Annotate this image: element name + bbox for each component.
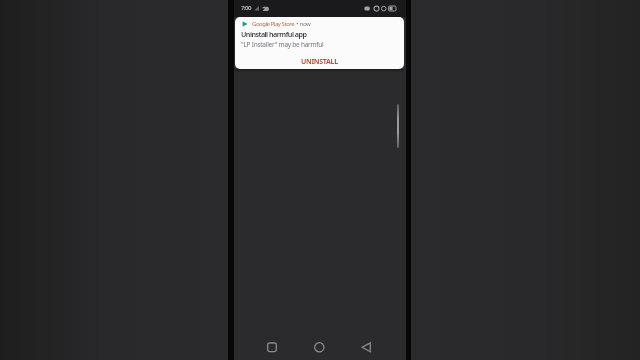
- button[interactable]: [361, 342, 372, 353]
- staticText: UNINSTALL: [301, 57, 338, 67]
- button[interactable]: Google Play Store: [235, 17, 404, 69]
- staticText: Google Play Store: [252, 20, 295, 28]
- staticText: • now: [295, 20, 311, 28]
- staticText: "LP Installer" may be harmful: [241, 40, 324, 49]
- button[interactable]: UNINSTALL: [235, 57, 404, 67]
- staticText: Uninstall harmful app: [241, 29, 307, 39]
- button[interactable]: [267, 342, 277, 353]
- staticText: 7:00: [241, 4, 251, 12]
- button[interactable]: [314, 342, 325, 353]
